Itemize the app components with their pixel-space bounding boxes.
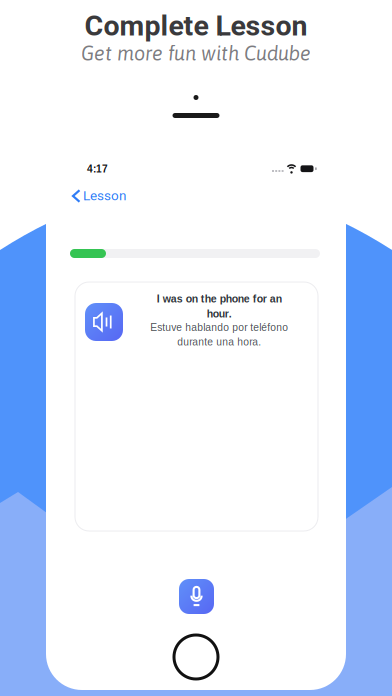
staticText: Lesson <box>83 186 126 206</box>
staticText: Complete Lesson <box>84 5 307 47</box>
button[interactable]: Record <box>179 579 214 614</box>
button[interactable]: Lesson <box>69 184 130 208</box>
staticText: I was on the phone for an hour. <box>156 293 281 320</box>
staticText: Estuve hablando por teléfono durante una… <box>150 322 288 348</box>
button[interactable]: Play audio <box>85 303 123 341</box>
staticText: 4:17 <box>87 163 108 175</box>
staticText: Get more fun with Cudube <box>81 42 311 65</box>
